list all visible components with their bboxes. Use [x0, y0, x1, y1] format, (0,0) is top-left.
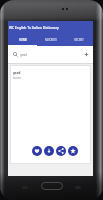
- button[interactable]: FAVORITE: [37, 33, 65, 46]
- staticText: HOME: [19, 38, 27, 42]
- staticText: good: [20, 53, 27, 57]
- button[interactable]: Add to favourites: [68, 146, 78, 156]
- staticText: good: [13, 71, 21, 75]
- staticText: RECENT: [74, 38, 84, 42]
- button[interactable]: Pronounce: [44, 146, 54, 156]
- button[interactable]: RECENT: [65, 33, 93, 46]
- staticText: FAVORITE: [45, 38, 57, 42]
- staticText: WC English To Italian Dictionary: [9, 25, 59, 29]
- button[interactable]: Favorite: [32, 146, 42, 156]
- staticText: buono: [13, 76, 21, 80]
- button[interactable]: Add word: [84, 52, 89, 57]
- button[interactable]: Share: [56, 146, 66, 156]
- button[interactable]: HOME: [8, 33, 37, 46]
